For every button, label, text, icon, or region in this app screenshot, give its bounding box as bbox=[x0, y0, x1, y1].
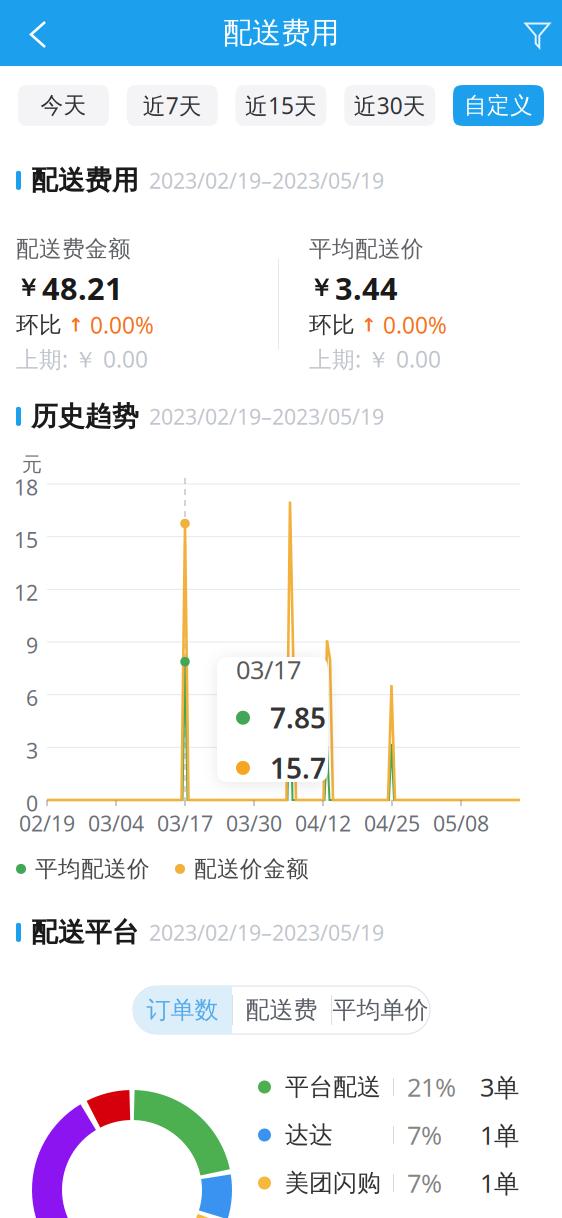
staticText: 2023/02/19–2023/05/19 bbox=[149, 166, 384, 194]
staticText: 21% bbox=[407, 1070, 456, 1104]
staticText: 3单 bbox=[480, 1070, 519, 1104]
staticText: 2023/02/19–2023/05/19 bbox=[149, 402, 384, 430]
staticText: 03/30 bbox=[226, 809, 282, 837]
staticText: 环比 bbox=[16, 311, 62, 339]
staticText: 48.21 bbox=[42, 268, 123, 308]
button[interactable]: 配送费 bbox=[232, 986, 331, 1034]
staticText: 18 bbox=[14, 473, 38, 501]
staticText: 近15天 bbox=[245, 90, 317, 120]
staticText: 上期: ￥ 0.00 bbox=[16, 344, 148, 374]
staticText: 03/04 bbox=[88, 809, 144, 837]
staticText: 配送费用 bbox=[223, 15, 339, 51]
button[interactable]: 今天 bbox=[18, 85, 109, 126]
staticText: 3 bbox=[26, 736, 38, 765]
staticText: 15 bbox=[14, 526, 38, 554]
staticText: 平均配送价 bbox=[35, 855, 150, 883]
button[interactable]: 平均单价 bbox=[331, 986, 430, 1034]
staticText: 订单数 bbox=[146, 995, 218, 1025]
staticText: 0.00% bbox=[383, 310, 447, 340]
staticText: 04/25 bbox=[364, 809, 420, 837]
staticText: 1单 bbox=[480, 1166, 519, 1200]
staticText: 近30天 bbox=[354, 90, 426, 120]
staticText: 03/17 bbox=[236, 652, 301, 686]
staticText: 近7天 bbox=[143, 90, 202, 120]
staticText: 3.44 bbox=[335, 268, 398, 308]
staticText: 历史趋势 bbox=[31, 400, 139, 433]
staticText: 04/12 bbox=[295, 809, 351, 837]
staticText: 9 bbox=[26, 631, 38, 659]
staticText: 0.00% bbox=[90, 310, 154, 340]
staticText: 今天 bbox=[40, 92, 86, 119]
staticText: 达达 bbox=[285, 1120, 333, 1150]
staticText: 7% bbox=[407, 1118, 442, 1152]
staticText: 配送平台 bbox=[31, 916, 139, 949]
staticText: 配送价金额 bbox=[194, 855, 309, 883]
staticText: 0 bbox=[26, 789, 38, 817]
button[interactable]: Filter bbox=[506, 0, 562, 66]
staticText: 2023/02/19–2023/05/19 bbox=[149, 918, 384, 946]
staticText: 自定义 bbox=[464, 92, 533, 119]
staticText: 05/08 bbox=[433, 809, 489, 837]
staticText: 7% bbox=[407, 1166, 442, 1200]
staticText: 平均单价 bbox=[332, 995, 428, 1025]
staticText: 配送费用 bbox=[31, 164, 139, 197]
staticText: 6 bbox=[26, 684, 38, 712]
staticText: 12 bbox=[14, 578, 38, 607]
staticText: ￥ bbox=[16, 273, 40, 303]
staticText: ↑ bbox=[68, 314, 84, 336]
button[interactable]: 近15天 bbox=[235, 85, 326, 126]
staticText: ↑ bbox=[361, 314, 377, 336]
staticText: 7.85 bbox=[270, 699, 326, 736]
staticText: 02/19 bbox=[19, 809, 75, 837]
staticText: 元 bbox=[22, 452, 42, 477]
staticText: 1单 bbox=[480, 1118, 519, 1152]
staticText: 配送费金额 bbox=[16, 235, 131, 263]
staticText: 美团闪购 bbox=[285, 1168, 381, 1198]
staticText: 平均配送价 bbox=[309, 235, 424, 263]
button[interactable]: 订单数 bbox=[133, 986, 232, 1034]
staticText: 03/17 bbox=[157, 809, 213, 837]
button[interactable]: Back bbox=[0, 0, 56, 66]
button[interactable]: 近7天 bbox=[127, 85, 218, 126]
staticText: 15.7 bbox=[270, 749, 326, 786]
staticText: 配送费 bbox=[245, 995, 317, 1025]
staticText: 平台配送 bbox=[285, 1072, 381, 1102]
button[interactable]: 近30天 bbox=[344, 85, 435, 126]
staticText: 环比 bbox=[309, 311, 355, 339]
staticText: 上期: ￥ 0.00 bbox=[309, 344, 441, 374]
staticText: ￥ bbox=[309, 273, 333, 303]
button[interactable]: 自定义 bbox=[453, 85, 544, 126]
